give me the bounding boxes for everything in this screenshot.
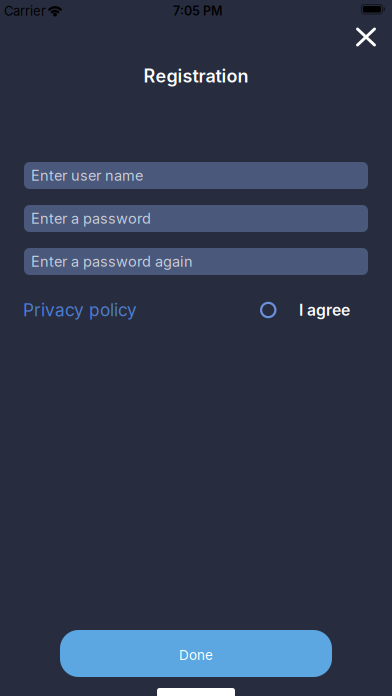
button[interactable]: Privacy policy: [23, 300, 137, 320]
staticText: Done: [179, 647, 213, 663]
button[interactable]: I agree: [260, 299, 350, 321]
staticText: I agree: [299, 300, 350, 319]
staticText: Privacy policy: [23, 300, 137, 320]
button[interactable]: Enter user name: [24, 162, 368, 189]
button[interactable]: Done: [60, 630, 332, 677]
staticText: Carrier: [4, 3, 46, 19]
staticText: Enter a password: [31, 210, 151, 227]
button[interactable]: [348, 20, 384, 54]
button[interactable]: Enter a password again: [24, 248, 368, 275]
button[interactable]: Enter a password: [24, 205, 368, 232]
staticText: Enter a password again: [31, 253, 193, 270]
staticText: Enter user name: [31, 167, 143, 184]
staticText: 7:05 PM: [173, 3, 223, 18]
staticText: Registration: [143, 65, 248, 87]
